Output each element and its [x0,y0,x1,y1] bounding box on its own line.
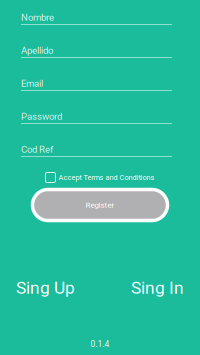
button[interactable]: Sing Up [16,278,75,298]
staticText: Accept Terms and Conditions [58,173,154,182]
staticText: Email [21,78,43,89]
staticText: Apellido [21,45,53,56]
button[interactable]: Sing In [131,278,184,298]
staticText: Register [85,200,114,210]
staticText: 0.1.4 [90,339,109,349]
staticText: Password [21,111,62,122]
staticText: Cod Ref [21,144,53,155]
staticText: Sing Up [16,278,75,298]
button[interactable]: Accept Terms and Conditions [45,172,154,182]
staticText: Sing In [131,278,184,298]
button[interactable]: Register [34,191,166,219]
staticText: Nombre [21,12,54,23]
